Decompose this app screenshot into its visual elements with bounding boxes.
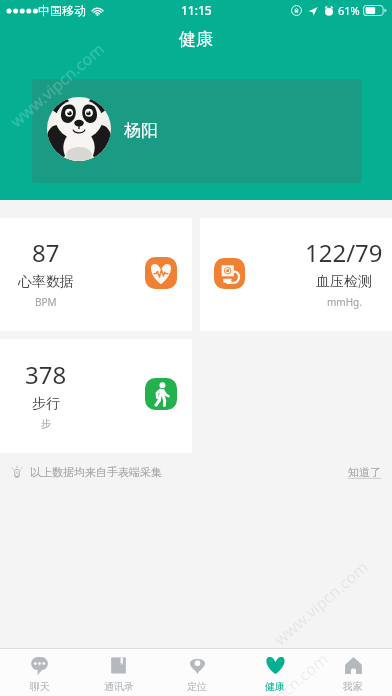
button[interactable]: 健康 (236, 649, 314, 696)
staticText: 健康 (265, 680, 285, 693)
button[interactable]: 87 (0, 218, 192, 331)
staticText: 通讯录 (104, 680, 134, 693)
other: Heart rate (145, 257, 177, 289)
staticText: 11:15 (181, 2, 212, 18)
staticText: 杨阳 (124, 120, 158, 141)
other: Blood pressure (214, 258, 245, 289)
staticText: 61% (338, 3, 360, 18)
button[interactable]: 我家 (314, 649, 392, 696)
button[interactable]: 通讯录 (79, 649, 158, 696)
button[interactable]: 聊天 (0, 649, 79, 696)
staticText: 心率数据 (18, 273, 74, 291)
button[interactable]: 122/79 (200, 218, 392, 331)
staticText: 步 (41, 417, 51, 430)
staticText: 以上数据均来自手表端采集 (30, 465, 162, 479)
staticText: 健康 (179, 29, 213, 50)
staticText: 血压检测 (316, 273, 372, 291)
other: Steps (145, 378, 177, 410)
staticText: 中国移动 (38, 3, 86, 18)
button[interactable]: 定位 (158, 649, 236, 696)
staticText: 我家 (343, 680, 363, 693)
staticText: mmHg. (327, 295, 362, 309)
staticText: BPM (35, 295, 57, 309)
staticText: 122/79 (305, 236, 383, 269)
button[interactable]: 杨阳 (32, 79, 362, 183)
staticText: 378 (25, 358, 67, 391)
button[interactable]: 378 (0, 339, 192, 453)
button[interactable]: 知道了 (348, 465, 381, 479)
staticText: www.vipcn.com (269, 556, 373, 650)
staticText: 87 (32, 236, 60, 269)
staticText: www.vipcn.com (229, 648, 333, 696)
staticText: 聊天 (30, 680, 50, 693)
staticText: www.vipcn.com (5, 38, 109, 132)
staticText: 步行 (32, 395, 60, 413)
staticText: 定位 (187, 680, 207, 693)
